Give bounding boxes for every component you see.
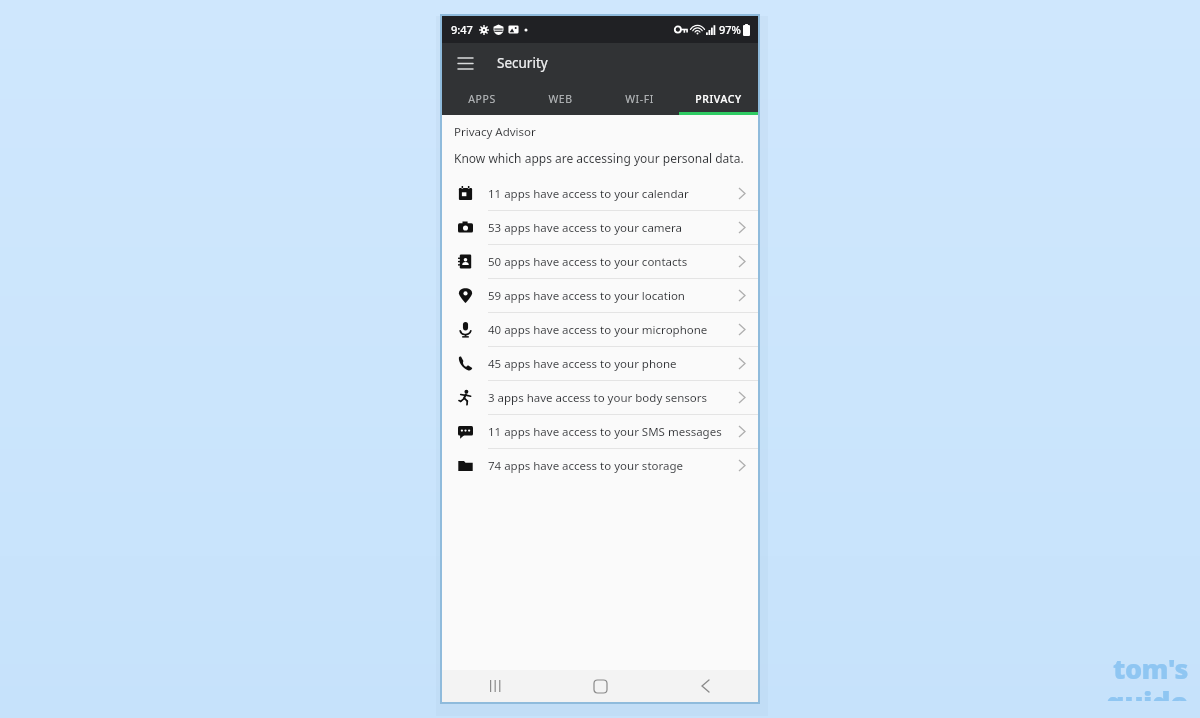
- button[interactable]: PRIVACY: [679, 82, 758, 115]
- staticText: WEB: [548, 92, 573, 106]
- staticText: APPS: [468, 92, 496, 106]
- button[interactable]: Recent apps: [442, 670, 548, 702]
- button[interactable]: 3 apps have access to your body sensors: [442, 381, 758, 414]
- button[interactable]: 50 apps have access to your contacts: [442, 245, 758, 278]
- staticText: 40 apps have access to your microphone: [488, 322, 708, 338]
- staticText: 97%: [719, 22, 741, 37]
- button[interactable]: 74 apps have access to your storage: [442, 449, 758, 482]
- staticText: Security: [497, 54, 548, 72]
- button[interactable]: 11 apps have access to your SMS messages: [442, 415, 758, 448]
- staticText: 50 apps have access to your contacts: [488, 254, 688, 270]
- staticText: PRIVACY: [695, 92, 742, 106]
- button[interactable]: 40 apps have access to your microphone: [442, 313, 758, 346]
- staticText: 59 apps have access to your location: [488, 288, 685, 304]
- button[interactable]: APPS: [442, 82, 521, 115]
- button[interactable]: Home: [548, 670, 653, 702]
- button[interactable]: 11 apps have access to your calendar: [442, 177, 758, 210]
- staticText: 3 apps have access to your body sensors: [488, 390, 708, 406]
- button[interactable]: Open navigation menu: [451, 49, 479, 77]
- staticText: 11 apps have access to your calendar: [488, 186, 689, 202]
- staticText: 74 apps have access to your storage: [488, 458, 684, 474]
- button[interactable]: WI-FI: [600, 82, 679, 115]
- button[interactable]: 59 apps have access to your location: [442, 279, 758, 312]
- staticText: guide: [1106, 682, 1188, 701]
- staticText: WI-FI: [625, 92, 654, 106]
- button[interactable]: WEB: [521, 82, 600, 115]
- button[interactable]: 45 apps have access to your phone: [442, 347, 758, 380]
- staticText: 45 apps have access to your phone: [488, 356, 677, 372]
- staticText: tom's: [1113, 650, 1188, 687]
- staticText: 53 apps have access to your camera: [488, 220, 683, 236]
- staticText: Privacy Advisor: [454, 124, 536, 140]
- staticText: 9:47: [451, 22, 473, 37]
- button[interactable]: Back: [653, 670, 758, 702]
- staticText: Know which apps are accessing your perso…: [454, 150, 744, 166]
- button[interactable]: 53 apps have access to your camera: [442, 211, 758, 244]
- staticText: 11 apps have access to your SMS messages: [488, 424, 722, 440]
